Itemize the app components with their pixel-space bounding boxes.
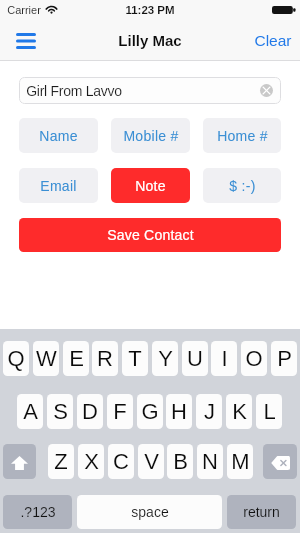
staticText: Mobile # (123, 128, 179, 144)
staticText: 11:23 PM (125, 4, 175, 17)
staticText: G (141, 399, 159, 424)
staticText: D (82, 399, 98, 424)
staticText: Q (7, 346, 25, 371)
staticText: E (69, 346, 84, 371)
button[interactable]: T (122, 341, 148, 376)
staticText: $ :-) (229, 178, 256, 194)
staticText: Girl From Lavvo (26, 83, 122, 99)
button[interactable]: Q (3, 341, 29, 376)
button[interactable]: E (63, 341, 89, 376)
staticText: Z (54, 449, 68, 474)
button[interactable]: V (138, 444, 164, 479)
button[interactable]: W (33, 341, 59, 376)
staticText: K (232, 399, 247, 424)
button[interactable]: A (17, 394, 43, 429)
button[interactable]: U (182, 341, 208, 376)
staticText: O (245, 346, 263, 371)
button[interactable]: B (167, 444, 193, 479)
staticText: V (144, 449, 159, 474)
button[interactable]: return (227, 495, 296, 529)
button[interactable]: P (271, 341, 297, 376)
button[interactable]: Save Contact (19, 218, 281, 252)
staticText: A (23, 399, 38, 424)
staticText: C (113, 449, 129, 474)
button[interactable]: F (107, 394, 133, 429)
button[interactable]: G (137, 394, 163, 429)
button[interactable]: H (166, 394, 192, 429)
button[interactable]: D (77, 394, 103, 429)
staticText: J (204, 399, 215, 424)
button[interactable]: Y (152, 341, 178, 376)
staticText: Note (135, 178, 166, 194)
staticText: W (36, 346, 57, 371)
staticText: L (263, 399, 276, 424)
button[interactable]: S (47, 394, 73, 429)
button[interactable]: J (196, 394, 222, 429)
staticText: P (277, 346, 292, 371)
staticText: M (231, 449, 250, 474)
button[interactable]: Menu (10, 27, 41, 55)
button[interactable]: Clear text (260, 84, 273, 97)
button[interactable]: C (108, 444, 134, 479)
button[interactable]: space (77, 495, 222, 529)
staticText: H (171, 399, 187, 424)
button[interactable]: K (226, 394, 252, 429)
staticText: return (243, 504, 280, 520)
staticText: .?123 (20, 504, 56, 520)
button[interactable]: N (197, 444, 223, 479)
button[interactable]: X (78, 444, 104, 479)
button[interactable]: Email (19, 168, 98, 203)
staticText: Home # (217, 128, 268, 144)
staticText: U (187, 346, 203, 371)
button[interactable]: Shift (3, 444, 36, 479)
staticText: Name (39, 128, 78, 144)
button[interactable]: Note (111, 168, 190, 203)
staticText: B (173, 449, 188, 474)
staticText: Email (40, 178, 77, 194)
button[interactable]: $ :-) (203, 168, 281, 203)
staticText: N (202, 449, 218, 474)
button[interactable]: Home # (203, 118, 281, 153)
button[interactable]: Mobile # (111, 118, 190, 153)
staticText: Y (158, 346, 173, 371)
staticText: Carrier (7, 4, 41, 16)
staticText: S (53, 399, 68, 424)
staticText: I (221, 346, 228, 371)
button[interactable]: Backspace (263, 444, 297, 479)
button[interactable]: .?123 (3, 495, 72, 529)
button[interactable]: Girl From Lavvo (19, 77, 281, 104)
staticText: Lilly Mac (118, 32, 182, 49)
button[interactable]: Name (19, 118, 98, 153)
staticText: T (128, 346, 142, 371)
button[interactable]: O (241, 341, 267, 376)
staticText: R (97, 346, 113, 371)
staticText: space (131, 504, 169, 520)
button[interactable]: M (227, 444, 253, 479)
staticText: X (84, 449, 99, 474)
button[interactable]: Clear (254, 32, 292, 49)
button[interactable]: R (92, 341, 118, 376)
button[interactable]: I (211, 341, 237, 376)
button[interactable]: L (256, 394, 282, 429)
staticText: F (113, 399, 127, 424)
staticText: Save Contact (107, 227, 194, 243)
staticText: Clear (254, 32, 292, 49)
button[interactable]: Z (48, 444, 74, 479)
